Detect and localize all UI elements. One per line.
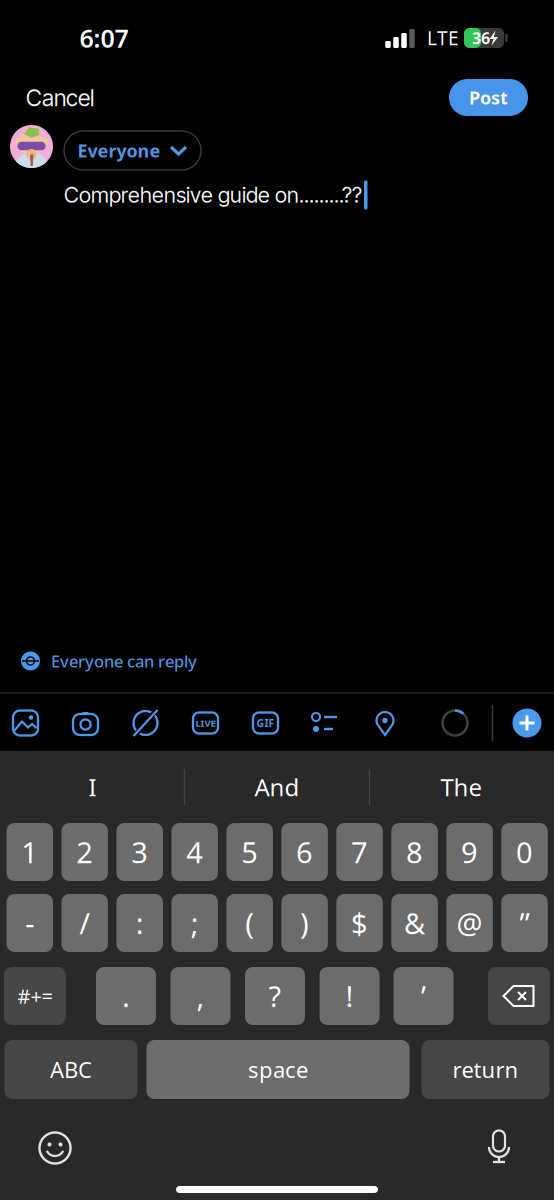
button[interactable]: 0 [501,823,548,881]
button[interactable]: And [192,762,362,812]
button[interactable]: Everyone can reply [21,643,341,679]
button[interactable]: Go Live [192,710,218,736]
staticText: ! [345,976,353,1016]
staticText: 6 [296,832,313,872]
button[interactable]: 3 [116,823,163,881]
staticText: ’ [421,976,426,1016]
button[interactable]: ” [501,894,548,952]
staticText: Everyone [77,138,160,163]
staticText: 7 [351,832,368,872]
button[interactable]: return [421,1040,549,1099]
button[interactable]: Add another post [512,708,541,737]
button[interactable]: GIF [252,710,278,736]
staticText: The [440,771,482,803]
button[interactable]: - [7,894,53,952]
staticText: & [404,903,425,943]
button[interactable]: Emoji [39,1132,71,1164]
button[interactable]: Poll [311,710,337,736]
button[interactable]: . [96,967,156,1025]
button[interactable]: ; [171,894,218,952]
staticText: Everyone can reply [51,650,197,672]
button[interactable]: ! [319,967,379,1025]
button[interactable]: : [116,894,163,952]
staticText: Post [469,85,508,110]
staticText: ) [300,903,309,943]
button[interactable]: Dictation [483,1132,515,1164]
button[interactable]: Cancel [26,84,94,112]
staticText: 2 [76,832,93,872]
staticText: 3 [131,832,148,872]
staticText: space [248,1054,308,1084]
button[interactable]: I [7,762,177,812]
staticText: 6:07 [79,21,128,55]
button[interactable]: space [146,1040,409,1099]
staticText: 8 [406,832,423,872]
staticText: #+= [17,982,52,1010]
button[interactable]: ) [281,894,328,952]
button[interactable]: 6 [281,823,328,881]
button[interactable]: , [170,967,230,1025]
staticText: - [25,903,34,943]
button[interactable]: ? [245,967,305,1025]
button[interactable]: 2 [61,823,108,881]
button[interactable]: / [61,894,108,952]
staticText: And [254,771,299,803]
button[interactable]: Everyone [64,131,201,170]
staticText: ” [519,903,529,943]
button[interactable]: 7 [336,823,383,881]
button[interactable]: Tag location [372,710,398,736]
button[interactable]: & [391,894,438,952]
staticText: ABC [50,1054,92,1084]
staticText: @ [457,903,483,943]
button[interactable]: ’ [393,967,453,1025]
staticText: : [136,903,144,943]
button[interactable]: Post [449,79,528,116]
staticText: Cancel [26,84,94,112]
button[interactable]: @ [446,894,493,952]
staticText: / [79,903,90,943]
button[interactable]: ( [226,894,273,952]
button[interactable]: 5 [226,823,273,881]
staticText: ( [245,903,254,943]
staticText: 1 [21,832,38,872]
staticText: . [122,976,130,1016]
button[interactable]: Camera [72,710,98,736]
staticText: $ [351,903,368,943]
staticText: ? [268,976,281,1016]
staticText: ; [191,903,199,943]
staticText: Comprehensive guide on.........?? [64,182,362,208]
staticText: 0 [516,832,533,872]
button[interactable]: 9 [446,823,493,881]
button[interactable]: Photos [12,710,38,736]
staticText: , [196,976,204,1016]
staticText: 36 [472,27,490,49]
button[interactable]: Grok [132,710,158,736]
staticText: GIF [256,716,274,730]
staticText: 9 [461,832,478,872]
button[interactable]: $ [336,894,383,952]
staticText: LIVE [195,716,215,729]
staticText: return [452,1054,518,1084]
button[interactable]: 1 [7,823,53,881]
staticText: LTE [427,25,459,51]
staticText: I [88,771,96,803]
button[interactable]: #+= [4,967,66,1025]
staticText: 4 [186,832,203,872]
button[interactable]: 8 [391,823,438,881]
button[interactable]: 4 [171,823,218,881]
button[interactable]: The [376,762,546,812]
button[interactable]: ABC [4,1040,137,1099]
staticText: 5 [241,832,258,872]
button[interactable]: Delete [488,967,550,1025]
